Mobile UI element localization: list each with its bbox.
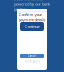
staticText: Continue: [24, 24, 39, 29]
staticText: Confirm your payment details: [18, 12, 45, 22]
button[interactable]: Continue: [20, 22, 44, 31]
staticText: Terms apply: [24, 60, 39, 63]
button[interactable]: Cancel: [20, 54, 44, 58]
staticText: Cancel: [27, 54, 36, 58]
staticText: Secure checkout powered by our bank part…: [14, 0, 50, 12]
